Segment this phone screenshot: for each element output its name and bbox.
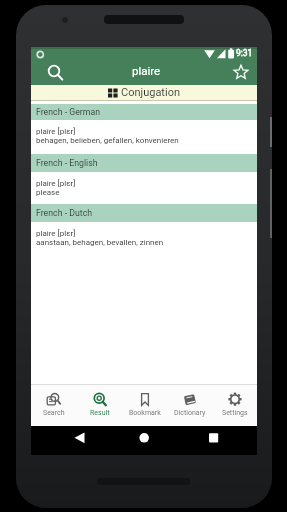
staticText: Dictionary: [174, 409, 206, 417]
button[interactable]: [31, 426, 107, 455]
staticText: Search: [43, 409, 65, 417]
staticText: 9:31: [236, 48, 253, 58]
staticText: behagen, belieben, gefallen, konvenieren: [36, 136, 179, 145]
button[interactable]: plaire [plɛr]: [31, 120, 257, 154]
button[interactable]: Bookmark: [122, 385, 167, 426]
button[interactable]: plaire [plɛr]: [31, 222, 257, 256]
button[interactable]: [182, 426, 257, 455]
button[interactable]: Settings: [212, 385, 257, 426]
staticText: Bookmark: [129, 409, 161, 417]
button[interactable]: French - German: [31, 104, 257, 120]
button[interactable]: [44, 62, 64, 82]
staticText: aanstaan, behagen, bevallen, zinnen: [36, 238, 164, 247]
button[interactable]: [230, 61, 252, 83]
staticText: plaire [plɛr]: [36, 229, 76, 238]
button[interactable]: Search: [31, 385, 77, 426]
staticText: Settings: [222, 409, 248, 417]
button[interactable]: Dictionary: [167, 385, 212, 426]
staticText: plaire: [132, 64, 161, 77]
button[interactable]: French - Dutch: [31, 204, 257, 222]
button[interactable]: Conjugation: [31, 85, 257, 100]
button[interactable]: French - English: [31, 154, 257, 172]
staticText: plaire [plɛr]: [36, 179, 76, 188]
staticText: French - German: [36, 107, 101, 117]
button[interactable]: [107, 426, 182, 455]
staticText: French - Dutch: [36, 208, 93, 218]
staticText: plaire [plɛr]: [36, 127, 76, 136]
staticText: please: [36, 188, 60, 197]
staticText: Result: [90, 409, 110, 417]
staticText: Conjugation: [121, 86, 180, 99]
staticText: French - English: [36, 158, 98, 168]
button[interactable]: plaire [plɛr]: [31, 172, 257, 204]
button[interactable]: Result: [77, 385, 122, 426]
